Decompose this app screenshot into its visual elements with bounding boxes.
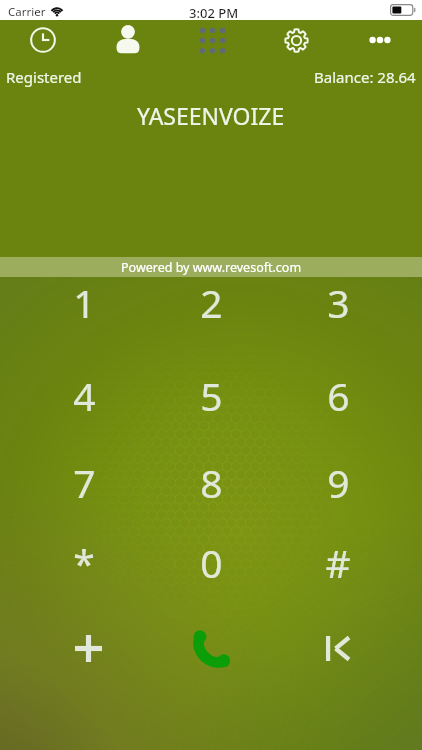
- staticText: 5: [200, 369, 223, 422]
- button[interactable]: Recents: [0, 19, 85, 61]
- staticText: Balance: 28.64: [314, 67, 416, 87]
- button[interactable]: Dialpad: [170, 19, 254, 61]
- button[interactable]: 1: [21, 260, 147, 344]
- staticText: Carrier: [8, 4, 46, 20]
- button[interactable]: 4: [21, 353, 147, 437]
- staticText: 3:02 PM: [189, 4, 239, 22]
- staticText: #: [325, 536, 351, 589]
- staticText: 3: [327, 276, 350, 329]
- staticText: *: [73, 536, 95, 589]
- button[interactable]: Contacts: [85, 19, 170, 61]
- staticText: 0: [200, 536, 223, 589]
- staticText: 4: [73, 369, 96, 422]
- staticText: 1: [73, 276, 96, 329]
- button[interactable]: 7: [21, 440, 147, 524]
- button[interactable]: 8: [148, 440, 274, 524]
- button[interactable]: *: [21, 520, 147, 604]
- button[interactable]: Settings: [254, 19, 338, 61]
- staticText: 2: [200, 276, 223, 329]
- button[interactable]: 2: [148, 260, 274, 344]
- button[interactable]: 9: [275, 440, 401, 524]
- button[interactable]: 0: [148, 520, 274, 604]
- staticText: Powered by www.revesoft.com: [121, 259, 302, 276]
- staticText: Registered: [6, 67, 82, 87]
- button[interactable]: 6: [275, 353, 401, 437]
- button[interactable]: 5: [148, 353, 274, 437]
- button[interactable]: More: [338, 19, 422, 61]
- staticText: 7: [73, 456, 96, 509]
- button[interactable]: #: [275, 520, 401, 604]
- button[interactable]: 3: [275, 260, 401, 344]
- staticText: 9: [327, 456, 350, 509]
- staticText: 8: [200, 456, 223, 509]
- staticText: YASEENVOIZE: [137, 100, 285, 130]
- staticText: 6: [327, 369, 350, 422]
- button[interactable]: Backspace: [275, 606, 401, 690]
- button[interactable]: Call: [148, 606, 274, 690]
- button[interactable]: Add: [25, 606, 151, 690]
